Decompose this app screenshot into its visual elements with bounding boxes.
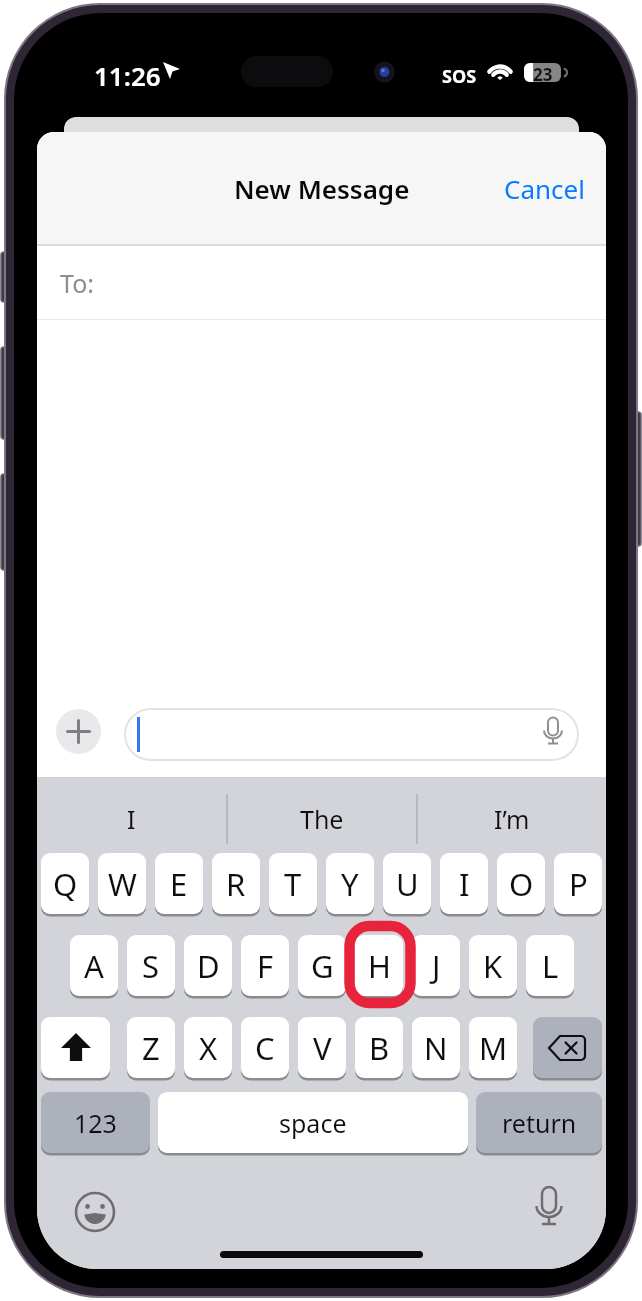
button[interactable]	[124, 708, 579, 761]
button[interactable]: R	[212, 853, 260, 914]
staticText: return	[502, 1106, 577, 1140]
button[interactable]: The	[228, 785, 416, 853]
staticText: X	[199, 1027, 218, 1069]
button[interactable]: A	[70, 935, 118, 996]
staticText: L	[542, 945, 559, 987]
button[interactable]	[529, 1185, 569, 1235]
button[interactable]: To:	[37, 246, 606, 319]
staticText: Cancel	[504, 171, 585, 206]
staticText: N	[424, 1027, 448, 1069]
staticText: To:	[60, 266, 94, 300]
staticText: The	[300, 802, 344, 836]
staticText: T	[284, 863, 302, 905]
staticText: F	[257, 945, 274, 987]
button[interactable]: B	[355, 1017, 403, 1078]
staticText: J	[432, 945, 441, 987]
button[interactable]	[75, 1192, 115, 1232]
button[interactable]: G	[298, 935, 346, 996]
staticText: 123	[74, 1106, 117, 1140]
button[interactable]: P	[554, 853, 602, 914]
staticText: I’m	[494, 802, 530, 836]
button[interactable]: I	[37, 785, 226, 853]
staticText: P	[569, 863, 588, 905]
staticText: C	[255, 1027, 275, 1069]
staticText: G	[311, 945, 334, 987]
button[interactable]: N	[412, 1017, 460, 1078]
button[interactable]: S	[127, 935, 175, 996]
staticText: Y	[341, 863, 359, 905]
staticText: Z	[142, 1027, 160, 1069]
button[interactable]	[533, 1017, 602, 1078]
button[interactable]: M	[469, 1017, 517, 1078]
button[interactable]: I	[440, 853, 488, 914]
button[interactable]: X	[184, 1017, 232, 1078]
button[interactable]: J	[412, 935, 460, 996]
staticText: E	[170, 863, 188, 905]
button[interactable]	[41, 1017, 110, 1078]
button[interactable]	[56, 709, 101, 754]
staticText: M	[479, 1027, 508, 1069]
staticText: K	[483, 945, 503, 987]
button[interactable]: L	[526, 935, 574, 996]
button[interactable]: E	[155, 853, 203, 914]
staticText: A	[84, 945, 104, 987]
button[interactable]: K	[469, 935, 517, 996]
button[interactable]: space	[158, 1092, 468, 1153]
staticText: U	[396, 863, 419, 905]
button[interactable]: return	[476, 1092, 602, 1153]
button[interactable]: O	[497, 853, 545, 914]
button[interactable]: I’m	[418, 785, 606, 853]
button[interactable]: Q	[41, 853, 89, 914]
button[interactable]: 123	[41, 1092, 150, 1153]
staticText: 23	[533, 63, 553, 82]
staticText: New Message	[234, 171, 410, 206]
staticText: O	[509, 863, 534, 905]
staticText: D	[197, 945, 220, 987]
button[interactable]: Z	[127, 1017, 175, 1078]
staticText: B	[369, 1027, 390, 1069]
button[interactable]: D	[184, 935, 232, 996]
button[interactable]: H	[355, 935, 403, 996]
staticText: S	[142, 945, 160, 987]
staticText: R	[226, 863, 246, 905]
staticText: I	[459, 863, 470, 905]
button[interactable]: V	[298, 1017, 346, 1078]
staticText: SOS	[442, 64, 477, 89]
staticText: Q	[53, 863, 78, 905]
staticText: I	[127, 802, 136, 836]
button[interactable]: Y	[326, 853, 374, 914]
button[interactable]: F	[241, 935, 289, 996]
button[interactable]: W	[98, 853, 146, 914]
button[interactable]: T	[269, 853, 317, 914]
staticText: W	[108, 863, 137, 905]
button[interactable]: C	[241, 1017, 289, 1078]
button[interactable]: U	[383, 853, 431, 914]
staticText: V	[313, 1027, 332, 1069]
staticText: 11:26	[94, 58, 161, 93]
staticText: space	[279, 1106, 347, 1140]
button[interactable]: Cancel	[504, 171, 606, 206]
staticText: H	[368, 945, 391, 987]
